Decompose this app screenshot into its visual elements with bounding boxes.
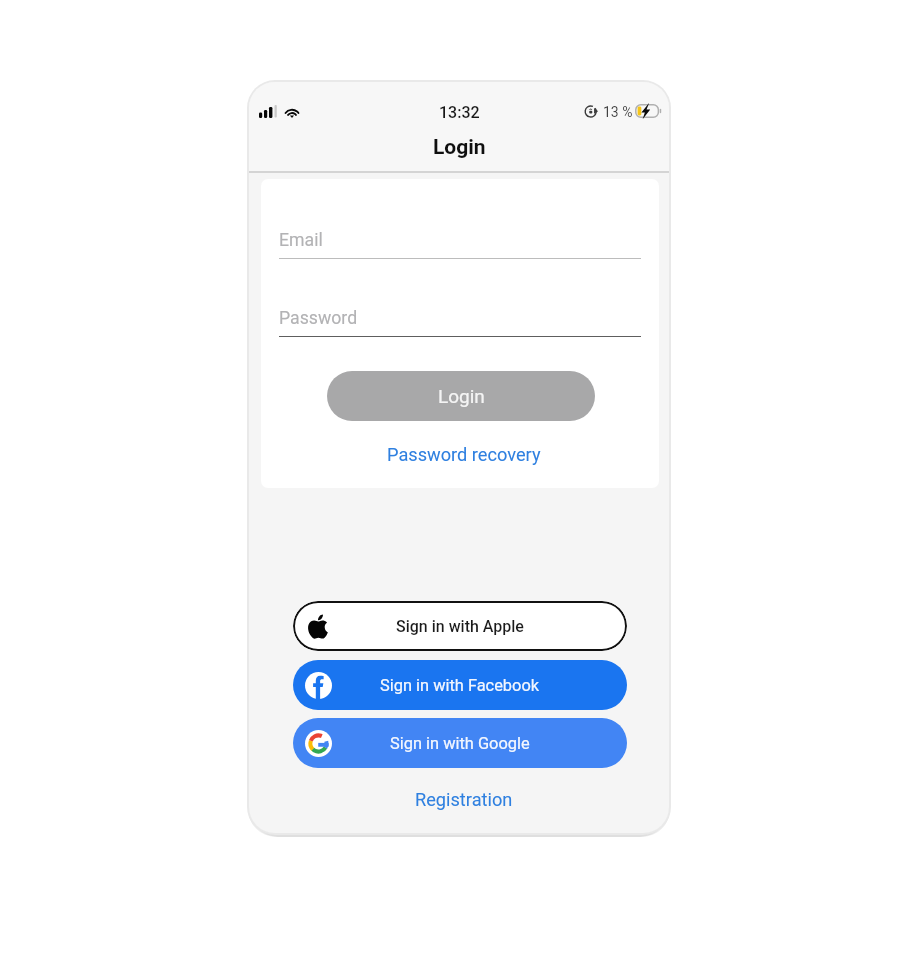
staticText: Password recovery: [387, 444, 541, 465]
staticText: 13 %: [603, 104, 633, 120]
button[interactable]: Login: [327, 371, 595, 421]
other: Battery 13 percent, charging: [635, 104, 662, 118]
staticText: 13:32: [439, 103, 480, 122]
other: Rotation lock: [585, 105, 598, 118]
button[interactable]: Sign in with Apple: [293, 601, 627, 651]
other: Wi-Fi connected: [283, 105, 301, 118]
staticText: Login: [438, 385, 485, 407]
button[interactable]: Sign in with Google: [293, 718, 627, 768]
button[interactable]: Email: [279, 216, 641, 268]
staticText: Sign in with Google: [390, 734, 530, 753]
staticText: Login: [433, 135, 486, 160]
button[interactable]: Sign in with Facebook: [293, 660, 627, 710]
staticText: Registration: [415, 789, 513, 810]
staticText: Sign in with Facebook: [380, 676, 540, 695]
staticText: Password: [279, 308, 358, 329]
button[interactable]: Password recovery: [377, 438, 551, 471]
staticText: Sign in with Apple: [396, 617, 524, 636]
button[interactable]: Password: [279, 294, 641, 346]
staticText: Email: [279, 230, 323, 251]
button[interactable]: Registration: [405, 783, 523, 816]
other: Cellular signal strength: [259, 105, 277, 118]
